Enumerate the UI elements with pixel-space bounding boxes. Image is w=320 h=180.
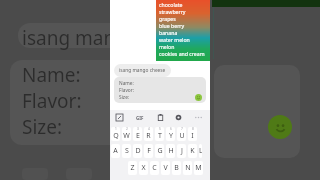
staticText: Flavor: — [22, 88, 82, 114]
staticText: M — [195, 163, 202, 173]
staticText: 8 — [192, 127, 194, 131]
staticText: Y — [169, 131, 173, 141]
button[interactable]: A — [111, 144, 120, 158]
staticText: Size: — [119, 94, 130, 101]
button[interactable]: 6 — [166, 127, 175, 141]
staticText: T — [158, 131, 162, 141]
staticText: GIF — [136, 115, 144, 121]
staticText: Name: — [119, 80, 134, 87]
staticText: I — [191, 131, 194, 141]
button[interactable]: 1 — [111, 127, 120, 141]
staticText: A — [113, 146, 118, 156]
staticText: isang mango cheese — [119, 67, 166, 74]
button[interactable]: GIF — [133, 113, 146, 122]
button[interactable]: Emoji — [268, 115, 292, 139]
staticText: Z — [130, 163, 135, 173]
button[interactable]: X — [139, 161, 148, 175]
staticText: V — [163, 163, 168, 173]
staticText: U — [179, 131, 185, 141]
staticText: 3 — [137, 127, 139, 131]
staticText: Name: — [22, 62, 81, 88]
staticText: X — [141, 163, 146, 173]
button[interactable]: 7 — [177, 127, 186, 141]
button[interactable]: V — [161, 161, 170, 175]
button[interactable]: 2 — [122, 127, 131, 141]
staticText: 6 — [170, 127, 172, 131]
button[interactable]: C — [150, 161, 159, 175]
staticText: 2 — [126, 127, 128, 131]
button[interactable]: Settings — [174, 113, 183, 122]
button[interactable]: S — [122, 144, 131, 158]
button[interactable]: N — [183, 161, 192, 175]
button[interactable]: F — [144, 144, 153, 158]
staticText: cookies and cream — [159, 50, 205, 57]
staticText: B — [174, 163, 179, 173]
button[interactable]: G — [155, 144, 164, 158]
button[interactable]: Clipboard — [156, 113, 165, 122]
button[interactable]: Stickers — [115, 113, 124, 122]
button[interactable]: More options — [192, 113, 205, 122]
button[interactable]: Z — [128, 161, 137, 175]
staticText: R — [146, 131, 151, 141]
button[interactable]: 4 — [144, 127, 153, 141]
staticText: chocolate — [159, 1, 183, 8]
staticText: C — [152, 163, 157, 173]
staticText: banana — [159, 29, 178, 36]
button[interactable]: H — [166, 144, 175, 158]
button[interactable]: Emoji — [195, 94, 202, 101]
staticText: E — [136, 131, 140, 141]
staticText: isang mang — [22, 25, 127, 51]
staticText: 5 — [159, 127, 161, 131]
button[interactable]: 3 — [133, 127, 142, 141]
staticText: H — [168, 146, 174, 156]
button[interactable]: B — [172, 161, 181, 175]
staticText: melon — [159, 43, 175, 50]
button[interactable]: L — [199, 144, 202, 158]
staticText: G — [157, 146, 163, 156]
button[interactable]: 8 — [188, 127, 197, 141]
button[interactable]: D — [133, 144, 142, 158]
button[interactable]: J — [177, 144, 186, 158]
button[interactable]: chocolate — [156, 0, 210, 61]
staticText: blue berry — [159, 22, 185, 29]
staticText: 4 — [148, 127, 150, 131]
staticText: S — [125, 146, 129, 156]
staticText: Size: — [22, 114, 63, 140]
staticText: K — [190, 146, 195, 156]
button[interactable]: 5 — [155, 127, 164, 141]
staticText: W — [123, 131, 130, 141]
button[interactable]: M — [194, 161, 203, 175]
staticText: 7 — [181, 127, 183, 131]
staticText: strawberry — [159, 8, 186, 15]
staticText: N — [185, 163, 191, 173]
button[interactable]: K — [188, 144, 197, 158]
staticText: L — [199, 146, 202, 156]
button[interactable]: isang mango cheese — [114, 64, 171, 77]
staticText: Q — [113, 131, 119, 141]
staticText: 1 — [115, 127, 117, 131]
staticText: water melon — [159, 36, 190, 43]
staticText: grapes — [159, 15, 176, 22]
staticText: Flavor: — [119, 87, 135, 94]
button[interactable]: Name: — [114, 77, 206, 103]
staticText: D — [135, 146, 141, 156]
staticText: J — [181, 146, 183, 156]
staticText: F — [147, 146, 151, 156]
